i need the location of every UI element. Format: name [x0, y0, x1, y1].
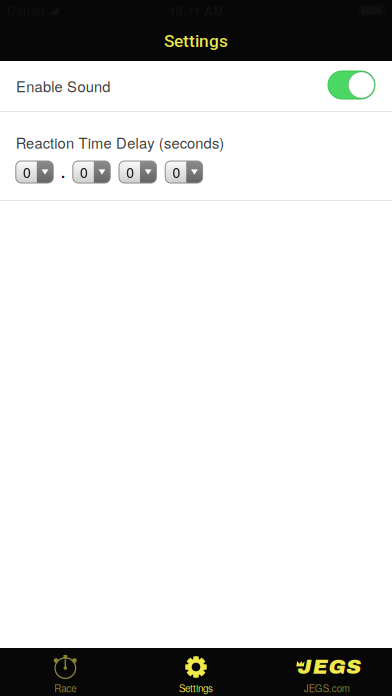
staticText: 0	[80, 162, 88, 182]
staticText: 0	[172, 162, 180, 182]
button[interactable]: 0	[119, 161, 156, 183]
staticText: Race	[54, 681, 76, 695]
staticText: .	[61, 161, 65, 182]
staticText: JEGS.com	[304, 681, 350, 695]
button[interactable]: JEGS	[261, 648, 392, 696]
button[interactable]: Settings	[131, 648, 261, 696]
staticText: JEGS	[298, 656, 361, 678]
button[interactable]: 0	[165, 161, 203, 183]
staticText: Enable Sound	[16, 75, 110, 96]
staticText: 0	[23, 162, 31, 182]
button[interactable]: Race	[0, 648, 131, 696]
button[interactable]: Enable Sound	[0, 61, 392, 111]
button[interactable]: 0	[73, 161, 110, 183]
staticText: Settings	[179, 681, 213, 695]
button[interactable]: 0	[16, 161, 53, 183]
staticText: 0	[126, 162, 134, 182]
staticText: Settings	[164, 31, 228, 51]
staticText: Reaction Time Delay (seconds)	[16, 132, 224, 153]
